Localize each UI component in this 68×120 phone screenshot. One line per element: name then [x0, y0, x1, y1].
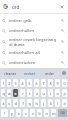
button[interactable]: o: [55, 89, 60, 97]
button[interactable]: d: [13, 99, 18, 107]
staticText: q: [2, 91, 5, 96]
staticText: v: [32, 111, 34, 116]
staticText: ordner cewek begerlang di dunia: [9, 37, 59, 47]
button[interactable]: ⇧: [1, 109, 8, 117]
button[interactable]: cleaner: [0, 68, 20, 78]
staticText: 6: [35, 81, 38, 86]
button[interactable]: f: [20, 99, 25, 107]
button[interactable]: Keyboard settings: [60, 68, 68, 78]
button[interactable]: ordner: [20, 68, 40, 78]
staticText: i: [50, 91, 51, 96]
staticText: k: [50, 101, 52, 106]
staticText: 4: [21, 81, 24, 86]
button[interactable]: 9: [55, 79, 60, 87]
staticText: a: [2, 101, 5, 106]
button[interactable]: z: [34, 89, 39, 97]
button[interactable]: w: [7, 89, 11, 97]
button[interactable]: y: [10, 109, 14, 117]
button[interactable]: j: [41, 99, 46, 107]
staticText: p: [63, 91, 66, 96]
button[interactable]: 1: [1, 79, 5, 87]
button[interactable]: p: [62, 89, 67, 97]
staticText: w: [8, 91, 11, 96]
button[interactable]: 3: [13, 79, 18, 87]
button[interactable]: e: [13, 89, 18, 97]
staticText: 2: [8, 81, 11, 86]
staticText: 7: [42, 81, 45, 86]
staticText: t: [29, 91, 31, 96]
button[interactable]: k: [48, 99, 53, 107]
button[interactable]: a: [1, 99, 5, 107]
staticText: 0: [63, 81, 66, 86]
staticText: cleaner: [4, 71, 17, 76]
button[interactable]: ordner gelb: [0, 16, 68, 26]
button[interactable]: b: [37, 109, 42, 117]
staticText: d: [14, 101, 17, 106]
button[interactable]: ordnerrücken: [0, 58, 68, 68]
button[interactable]: ⌫: [58, 109, 67, 117]
staticText: ordnerhüllen a4: [9, 50, 59, 56]
button[interactable]: u: [41, 89, 46, 97]
staticText: y: [11, 111, 13, 116]
button[interactable]: h: [34, 99, 39, 107]
button[interactable]: 0: [62, 79, 67, 87]
staticText: g: [28, 101, 31, 106]
staticText: o: [56, 91, 59, 96]
button[interactable]: t: [27, 89, 32, 97]
button[interactable]: ö: [62, 99, 67, 107]
staticText: 5: [28, 81, 31, 86]
staticText: n: [45, 111, 48, 116]
staticText: 9: [56, 81, 59, 86]
staticText: ordner gelb: [9, 18, 59, 24]
staticText: f: [22, 101, 24, 106]
staticText: ⇧: [3, 111, 6, 115]
staticText: ordner: [24, 71, 36, 76]
staticText: c: [25, 111, 27, 116]
button[interactable]: 4: [20, 79, 25, 87]
staticText: r: [22, 91, 24, 96]
button[interactable]: ordnerhüllen: [0, 26, 68, 36]
staticText: order: [45, 71, 55, 76]
staticText: 8: [49, 81, 52, 86]
staticText: s: [8, 101, 10, 106]
staticText: j: [43, 101, 44, 106]
button[interactable]: ordner cewek begerlang di dunia: [0, 36, 68, 48]
button[interactable]: 2: [7, 79, 11, 87]
staticText: z: [36, 91, 38, 96]
staticText: 1: [2, 81, 5, 86]
staticText: ordnerhüllen: [9, 28, 59, 34]
button[interactable]: 7: [41, 79, 46, 87]
button[interactable]: order: [40, 68, 60, 78]
button[interactable]: r: [20, 89, 25, 97]
staticText: ⌫: [60, 111, 65, 115]
button[interactable]: g: [27, 99, 32, 107]
button[interactable]: x: [16, 109, 21, 117]
button[interactable]: l: [55, 99, 60, 107]
button[interactable]: c: [23, 109, 28, 117]
button[interactable]: 5: [27, 79, 32, 87]
staticText: ordnerrücken: [9, 60, 59, 66]
staticText: e: [14, 91, 17, 96]
staticText: b: [38, 111, 41, 116]
button[interactable]: q: [1, 89, 5, 97]
button[interactable]: ordnerhüllen a4: [0, 48, 68, 58]
button[interactable]: 8: [48, 79, 53, 87]
button[interactable]: i: [48, 89, 53, 97]
button[interactable]: 6: [34, 79, 39, 87]
staticText: h: [35, 101, 38, 106]
button[interactable]: m: [51, 109, 56, 117]
staticText: x: [18, 111, 20, 116]
button[interactable]: s: [7, 99, 11, 107]
staticText: u: [42, 91, 45, 96]
staticText: l: [57, 101, 58, 106]
button[interactable]: Clear search: [57, 2, 66, 11]
button[interactable]: v: [30, 109, 35, 117]
staticText: m: [52, 111, 56, 116]
staticText: ö: [63, 101, 66, 106]
staticText: 3: [14, 81, 17, 86]
staticText: ord: [12, 4, 57, 10]
button[interactable]: n: [44, 109, 49, 117]
